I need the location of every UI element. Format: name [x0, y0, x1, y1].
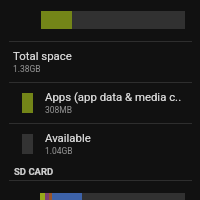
button[interactable]: Apps (app data & media c.. [0, 83, 200, 123]
staticText: Apps (app data & media c.. [45, 90, 182, 103]
staticText: 1.38GB [13, 64, 41, 74]
staticText: Total space [13, 49, 72, 62]
staticText: SD CARD [14, 166, 54, 177]
button[interactable]: Total space [0, 42, 200, 82]
staticText: 308MB [45, 105, 73, 115]
staticText: 1.04GB [45, 146, 73, 156]
staticText: Available [45, 131, 91, 144]
button[interactable]: Available [0, 124, 200, 164]
